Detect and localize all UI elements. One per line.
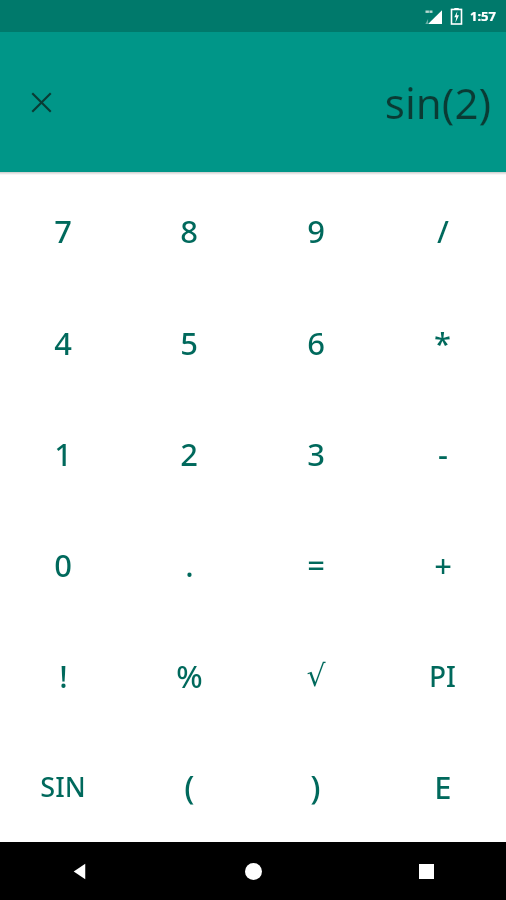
staticText: 5 [180,322,198,364]
button[interactable]: / [379,175,506,287]
staticText: 4 [54,322,72,364]
staticText: sin(2) [384,74,491,131]
staticText: = [307,544,325,586]
staticText: SIN [40,768,86,805]
staticText: √ [306,658,326,693]
button[interactable]: ( [126,731,252,842]
button[interactable]: * [379,287,506,398]
button[interactable]: 6 [252,287,379,398]
button[interactable]: PI [379,620,506,731]
button[interactable]: 3 [252,398,379,509]
staticText: ) [310,764,321,809]
staticText: % [176,655,203,697]
button[interactable]: 5 [126,287,252,398]
button[interactable]: 4 [0,287,126,398]
staticText: 6 [307,322,325,364]
button[interactable]: 8 [126,175,252,287]
staticText: 3 [307,433,325,475]
staticText: / [437,210,449,252]
staticText: 2 [180,433,198,475]
staticText: + [434,544,452,586]
button[interactable]: E [379,731,506,842]
button[interactable]: ! [0,620,126,731]
button[interactable]: . [126,509,252,620]
staticText: ! [59,655,68,697]
button[interactable]: = [252,509,379,620]
staticText: - [438,433,448,475]
button[interactable]: % [126,620,252,731]
staticText: PI [429,657,456,695]
staticText: 7 [54,210,72,252]
staticText: 1:57 [470,7,496,25]
button[interactable]: Recent apps [404,849,448,893]
button[interactable]: 7 [0,175,126,287]
button[interactable]: √ [252,620,379,731]
staticText: ( [184,764,195,809]
staticText: * [434,322,451,364]
button[interactable]: 2 [126,398,252,509]
button[interactable]: 0 [0,509,126,620]
staticText: 8 [180,210,198,252]
staticText: 0 [54,544,72,586]
button[interactable]: 1 [0,398,126,509]
button[interactable]: Back [58,849,102,893]
staticText: 9 [307,210,325,252]
button[interactable]: + [379,509,506,620]
button[interactable]: Home [231,849,275,893]
button[interactable]: - [379,398,506,509]
button[interactable]: SIN [0,731,126,842]
staticText: 1 [54,433,72,475]
button[interactable]: Clear [15,76,67,128]
staticText: . [185,544,194,586]
staticText: E [434,766,452,808]
button[interactable]: 9 [252,175,379,287]
button[interactable]: ) [252,731,379,842]
